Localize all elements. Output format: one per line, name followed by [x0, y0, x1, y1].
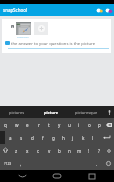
button[interactable]: Emoji [102, 157, 114, 170]
staticText: p [98, 122, 101, 128]
button[interactable]: , [16, 157, 26, 170]
button[interactable]: r [33, 118, 44, 131]
button[interactable]: Attached screenshot [16, 22, 31, 35]
staticText: Screenshot [17, 36, 29, 39]
staticText: r [38, 122, 40, 128]
staticText: w [15, 122, 19, 128]
button[interactable]: n [64, 144, 74, 157]
button[interactable]: Gallery [8, 22, 16, 30]
button[interactable]: Backspace [104, 118, 114, 131]
button[interactable]: picturesque [69, 106, 104, 118]
button[interactable]: k [78, 131, 88, 144]
button[interactable]: Add attachment [34, 22, 48, 35]
button[interactable]: u [64, 118, 74, 131]
button[interactable]: Account [95, 6, 104, 15]
staticText: pictures [9, 110, 25, 115]
staticText: a [9, 135, 12, 141]
button[interactable]: z [11, 144, 22, 157]
button[interactable]: ?123 [0, 157, 16, 170]
button[interactable]: g [48, 131, 58, 144]
button[interactable]: ! [84, 144, 94, 157]
button[interactable]: Voice input [104, 106, 114, 118]
button[interactable]: m [74, 144, 84, 157]
button[interactable]: l [88, 131, 98, 144]
button[interactable]: Home [44, 170, 70, 182]
staticText: m [77, 148, 82, 154]
button[interactable]: Hide keyboard [9, 170, 35, 182]
button[interactable]: c [33, 144, 44, 157]
button[interactable]: f [38, 131, 48, 144]
staticText: ? [98, 148, 100, 154]
staticText: picturesque [75, 110, 98, 115]
button[interactable]: x [22, 144, 33, 157]
staticText: c [37, 148, 40, 154]
staticText: . [96, 161, 98, 167]
button[interactable]: Recent apps [79, 170, 105, 182]
staticText: ! [88, 148, 90, 154]
staticText: the answer to your questions is the pict… [11, 41, 96, 47]
staticText: j [72, 135, 74, 141]
staticText: u [68, 122, 71, 128]
button[interactable]: w [11, 118, 22, 131]
button[interactable]: i [74, 118, 84, 131]
button[interactable]: e [22, 118, 33, 131]
button[interactable]: Settings [104, 144, 114, 157]
staticText: x [26, 148, 29, 154]
staticText: ?123 [4, 161, 12, 166]
staticText: e [26, 122, 29, 128]
button[interactable]: a [5, 131, 16, 144]
button[interactable]: Shift [0, 144, 11, 157]
button[interactable]: v [44, 144, 54, 157]
button[interactable]: Enter [98, 131, 114, 144]
staticText: n [68, 148, 71, 154]
staticText: t [48, 122, 50, 128]
staticText: f [42, 135, 44, 141]
staticText: d [31, 135, 34, 141]
button[interactable]: t [44, 118, 54, 131]
staticText: y [58, 122, 61, 128]
staticText: snapSchool [3, 7, 27, 13]
staticText: q [4, 122, 7, 128]
staticText: l [92, 135, 94, 141]
staticText: , [20, 161, 22, 167]
staticText: g [52, 135, 55, 141]
staticText: h [62, 135, 65, 141]
button[interactable]: b [54, 144, 64, 157]
button[interactable]: h [58, 131, 68, 144]
button[interactable]: q [0, 118, 11, 131]
button[interactable]: . [92, 157, 102, 170]
button[interactable]: d [27, 131, 38, 144]
button[interactable]: j [68, 131, 78, 144]
staticText: s [20, 135, 23, 141]
staticText: picture [44, 110, 59, 115]
staticText: z [15, 148, 18, 154]
button[interactable]: y [54, 118, 64, 131]
button[interactable]: More options [104, 6, 113, 15]
staticText: v [48, 148, 51, 154]
button[interactable]: ? [94, 144, 104, 157]
button[interactable]: pictures [0, 106, 34, 118]
staticText: b [58, 148, 61, 154]
staticText: i [78, 122, 80, 128]
staticText: k [82, 135, 85, 141]
button[interactable]: o [84, 118, 94, 131]
button[interactable]: p [94, 118, 104, 131]
button[interactable]: picture [34, 106, 69, 118]
button[interactable]: s [16, 131, 27, 144]
staticText: o [88, 122, 91, 128]
